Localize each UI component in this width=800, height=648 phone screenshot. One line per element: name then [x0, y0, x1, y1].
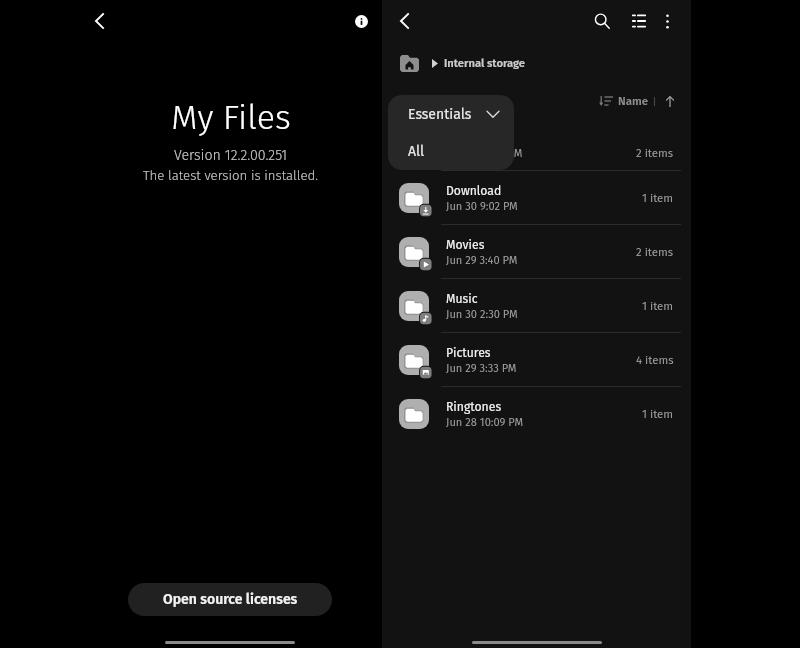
staticText: Essentials [408, 106, 472, 123]
button[interactable]: DCIM [382, 118, 691, 172]
button[interactable]: Sort ascending [659, 90, 681, 112]
button[interactable]: Navigate up [84, 6, 114, 36]
staticText: Jun 29 3:33 PM [446, 362, 517, 375]
staticText: Ringtones [446, 400, 502, 415]
button[interactable]: Open source licenses [128, 583, 332, 616]
staticText: 2 items [636, 146, 674, 160]
button[interactable]: Search [587, 6, 617, 36]
button[interactable]: Internal storage [382, 42, 691, 85]
button[interactable]: Download [382, 171, 691, 225]
button[interactable]: Music [382, 279, 691, 333]
staticText: Jun 28 10:09 PM [446, 416, 524, 429]
staticText: 4 items [636, 353, 674, 367]
button[interactable]: All [388, 133, 514, 170]
button[interactable]: Navigate up [389, 6, 419, 36]
button[interactable]: App info [346, 6, 376, 36]
staticText: Movies [446, 238, 485, 253]
staticText: All [408, 143, 425, 160]
staticText: Open source licenses [163, 591, 298, 608]
staticText: 1 item [642, 191, 674, 205]
staticText: 1 item [642, 407, 674, 421]
button[interactable]: Name [596, 90, 653, 112]
staticText: Internal storage [444, 57, 525, 70]
staticText: Download [446, 184, 502, 199]
button[interactable]: More options [652, 6, 682, 36]
staticText: Jun 30 10:32 PM [446, 147, 523, 160]
staticText: Jun 29 3:40 PM [446, 254, 518, 267]
button[interactable]: Ringtones [382, 387, 691, 441]
staticText: Name [618, 94, 649, 108]
button[interactable]: Pictures [382, 333, 691, 387]
button[interactable]: Movies [382, 225, 691, 279]
staticText: Jun 30 9:02 PM [446, 200, 518, 213]
staticText: 2 items [636, 245, 674, 259]
staticText: The latest version is installed. [143, 168, 318, 184]
button[interactable]: Change view [624, 6, 654, 36]
staticText: Jun 30 2:30 PM [446, 308, 518, 321]
staticText: Music [446, 292, 478, 307]
staticText: My Files [171, 97, 291, 138]
staticText: Pictures [446, 346, 491, 361]
staticText: 1 item [642, 299, 674, 313]
staticText: Version 12.2.00.251 [174, 147, 288, 164]
button[interactable]: Essentials [388, 95, 514, 133]
